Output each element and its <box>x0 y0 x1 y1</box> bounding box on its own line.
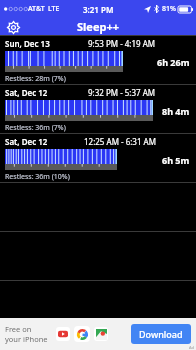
staticText: AT&T <box>28 4 45 14</box>
staticText: 6h 26m <box>157 56 190 68</box>
staticText: Ad <box>189 345 195 350</box>
staticText: Sat, Dec 12 <box>5 87 48 98</box>
staticText: 81% <box>162 4 176 14</box>
button[interactable]: Sun, Dec 13 <box>0 36 196 84</box>
staticText: Sleep++ <box>77 19 120 34</box>
staticText: 9:32 PM - 5:37 AM <box>88 87 156 98</box>
button[interactable]: Sat, Dec 12 <box>0 134 196 182</box>
button[interactable]: Download <box>131 324 191 344</box>
staticText: Restless: 36m (7%) <box>5 123 66 133</box>
staticText: Sat, Dec 12 <box>5 136 48 147</box>
staticText: Restless: 28m (7%) <box>5 74 66 84</box>
staticText: LTE <box>48 4 60 14</box>
button[interactable]: Sat, Dec 12 <box>0 85 196 133</box>
button[interactable]: Settings <box>5 19 21 35</box>
staticText: 8h 4m <box>162 105 190 117</box>
staticText: Sun, Dec 13 <box>5 38 50 49</box>
staticText: Free on <box>5 324 32 334</box>
staticText: 12:25 AM - 6:31 AM <box>84 136 156 147</box>
staticText: 9:53 PM - 4:19 AM <box>88 38 156 49</box>
staticText: 3:21 PM <box>83 4 114 15</box>
staticText: Download <box>139 328 183 340</box>
staticText: your iPhone <box>5 334 48 344</box>
staticText: Restless: 36m (10%) <box>5 172 70 182</box>
staticText: 6h 5m <box>162 154 190 166</box>
